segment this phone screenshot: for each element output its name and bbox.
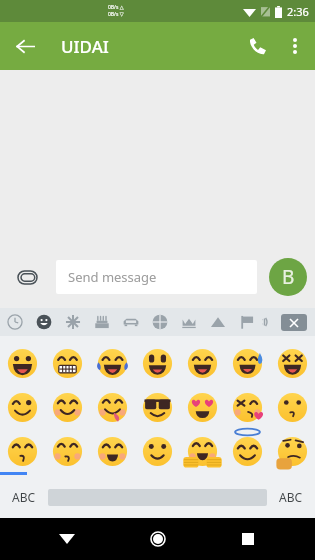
- staticText: 0B/s △: [108, 4, 124, 11]
- button[interactable]: SWEAT: [225, 342, 270, 384]
- button[interactable]: BLUSH2: [90, 430, 135, 472]
- button[interactable]: SMILE_EYES: [180, 342, 225, 384]
- button[interactable]: JOY: [90, 342, 135, 384]
- button[interactable]: Attach: [10, 260, 44, 294]
- button[interactable]: TONGUE: [90, 386, 135, 428]
- staticText: 0B/s ▽: [108, 11, 124, 18]
- button[interactable]: Send message: [56, 260, 257, 294]
- button[interactable]: THINK: [270, 430, 315, 472]
- button[interactable]: ABC: [267, 476, 315, 518]
- button[interactable]: Symbols: [203, 308, 232, 336]
- button[interactable]: Emoticons: [261, 308, 269, 336]
- staticText: 2:36: [287, 4, 309, 19]
- staticText: Send message: [68, 268, 157, 286]
- button[interactable]: Call: [237, 26, 277, 66]
- button[interactable]: Objects: [174, 308, 203, 336]
- button[interactable]: Travel: [116, 308, 145, 336]
- staticText: B: [282, 264, 295, 290]
- button[interactable]: SLIGHT: [135, 430, 180, 472]
- staticText: ABC: [279, 489, 303, 505]
- button[interactable]: Backspace: [281, 314, 307, 331]
- button[interactable]: Food: [87, 308, 116, 336]
- button[interactable]: Flags: [232, 308, 261, 336]
- button[interactable]: GRIN_BIG: [0, 342, 45, 384]
- button[interactable]: Back: [6, 27, 44, 65]
- button[interactable]: B: [269, 258, 307, 296]
- button[interactable]: WINK: [0, 386, 45, 428]
- button[interactable]: Activity: [145, 308, 174, 336]
- button[interactable]: KISS_CLOSED: [0, 430, 45, 472]
- button[interactable]: Nature: [58, 308, 87, 336]
- button[interactable]: SQUINT: [270, 342, 315, 384]
- button[interactable]: BLUSH_SMILE: [45, 386, 90, 428]
- button[interactable]: ABC: [0, 476, 48, 518]
- button[interactable]: HEART_EYES: [180, 386, 225, 428]
- staticText: UIDAI: [61, 35, 109, 58]
- staticText: ABC: [12, 489, 36, 505]
- button[interactable]: KISS_HEART: [225, 386, 270, 428]
- button[interactable]: Home: [135, 518, 181, 560]
- button[interactable]: SUNGLASSES: [135, 386, 180, 428]
- button[interactable]: HUG: [180, 430, 225, 472]
- button[interactable]: Smileys: [29, 308, 58, 336]
- button[interactable]: Recent: [0, 308, 29, 336]
- button[interactable]: Back: [44, 518, 90, 560]
- button[interactable]: SMILE_OPEN: [135, 342, 180, 384]
- button[interactable]: GRIN_TEETH: [45, 342, 90, 384]
- button[interactable]: Recents: [225, 518, 271, 560]
- button[interactable]: KISS_BLUSH: [45, 430, 90, 472]
- button[interactable]: More options: [277, 28, 313, 64]
- button[interactable]: HALO: [225, 430, 270, 472]
- button[interactable]: KISS_PLAIN: [270, 386, 315, 428]
